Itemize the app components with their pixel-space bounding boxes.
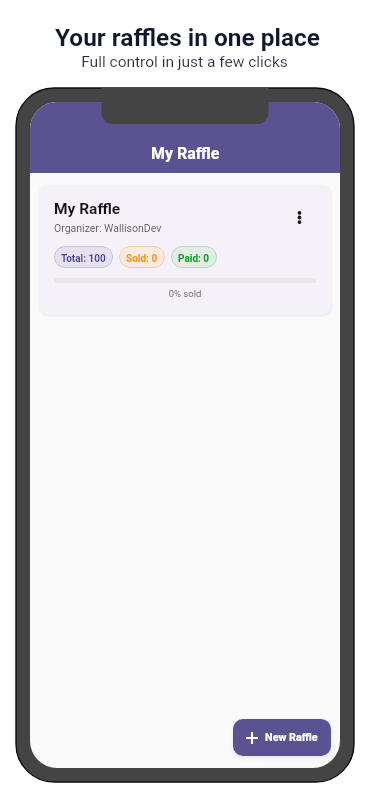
staticText: My Raffle xyxy=(54,200,121,218)
staticText: Your raffles in one place xyxy=(55,23,320,52)
staticText: Paid: 0 xyxy=(178,253,210,265)
button[interactable]: Total: 100 xyxy=(54,246,113,268)
staticText: 0% sold xyxy=(54,288,316,299)
staticText: Total: 100 xyxy=(61,253,106,265)
staticText: My Raffle xyxy=(151,144,220,163)
button[interactable]: Sold: 0 xyxy=(119,246,165,268)
button[interactable]: New Raffle xyxy=(233,719,331,756)
button[interactable]: My Raffle xyxy=(39,185,331,315)
staticText: Organizer: WallisonDev xyxy=(54,222,162,234)
staticText: New Raffle xyxy=(265,731,318,744)
staticText: Sold: 0 xyxy=(126,253,158,265)
button[interactable]: More options xyxy=(282,200,316,234)
button[interactable]: Paid: 0 xyxy=(171,246,217,268)
staticText: Full control in just a few clicks xyxy=(81,53,288,71)
